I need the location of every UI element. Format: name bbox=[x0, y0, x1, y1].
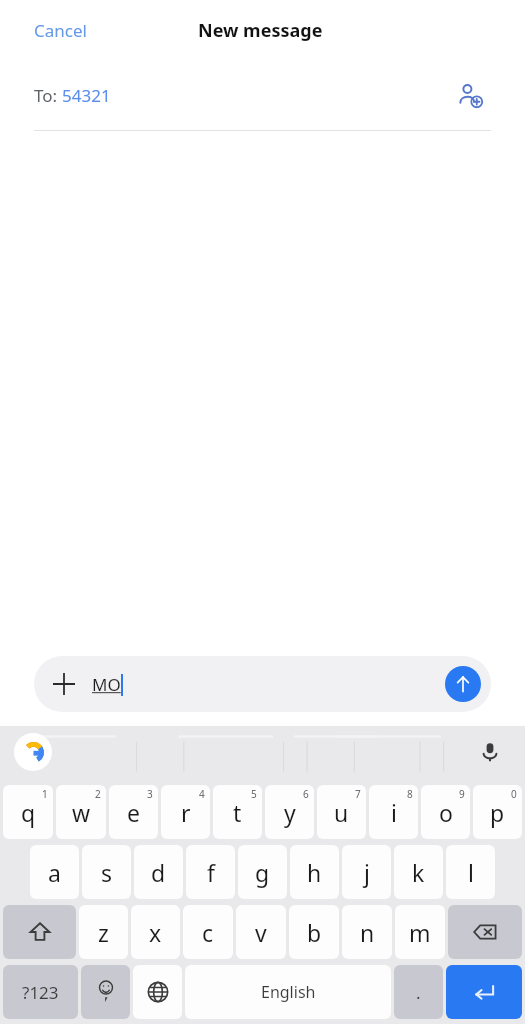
staticText: u bbox=[334, 797, 349, 828]
button[interactable]: x bbox=[131, 905, 180, 959]
button[interactable]: g bbox=[238, 845, 287, 899]
staticText: 5 bbox=[251, 787, 257, 801]
staticText: e bbox=[127, 797, 140, 828]
staticText: 8 bbox=[407, 787, 413, 801]
button[interactable]: e bbox=[109, 785, 158, 839]
staticText: f bbox=[207, 857, 215, 888]
staticText: h bbox=[307, 857, 322, 888]
staticText: x bbox=[149, 917, 162, 948]
button[interactable]: n bbox=[342, 905, 392, 959]
staticText: b bbox=[307, 917, 322, 948]
button[interactable]: i bbox=[369, 785, 418, 839]
staticText: q bbox=[21, 797, 36, 828]
button[interactable]: Voice input bbox=[473, 735, 507, 769]
staticText: k bbox=[412, 857, 425, 888]
button[interactable]: Change language bbox=[133, 965, 182, 1019]
button[interactable]: Send bbox=[445, 666, 481, 702]
staticText: . bbox=[416, 981, 421, 1004]
button[interactable]: Add attachment bbox=[46, 666, 82, 702]
staticText: s bbox=[101, 857, 113, 888]
staticText: 7 bbox=[355, 787, 361, 801]
staticText: 0 bbox=[511, 787, 517, 801]
button[interactable]: w bbox=[56, 785, 106, 839]
button[interactable]: Google bbox=[14, 733, 52, 771]
staticText: g bbox=[255, 857, 270, 888]
staticText: Cancel bbox=[34, 19, 87, 42]
button[interactable]: ?123 bbox=[3, 965, 78, 1019]
button[interactable]: u bbox=[317, 785, 366, 839]
staticText: English bbox=[261, 981, 316, 1003]
staticText: l bbox=[468, 857, 474, 888]
button[interactable]: Cancel bbox=[20, 11, 101, 50]
button[interactable]: Backspace bbox=[448, 905, 522, 959]
staticText: MO bbox=[92, 673, 121, 696]
button[interactable]: p bbox=[473, 785, 522, 839]
staticText: t bbox=[233, 797, 242, 828]
button[interactable]: r bbox=[161, 785, 210, 839]
button[interactable]: z bbox=[79, 905, 128, 959]
staticText: c bbox=[202, 917, 214, 948]
staticText: 54321 bbox=[62, 84, 111, 107]
staticText: z bbox=[98, 917, 109, 948]
button[interactable]: Emoji bbox=[81, 965, 130, 1019]
button[interactable]: f bbox=[186, 845, 235, 899]
button[interactable]: v bbox=[236, 905, 286, 959]
button[interactable]: t bbox=[213, 785, 262, 839]
staticText: To: bbox=[34, 84, 62, 107]
button[interactable]: c bbox=[183, 905, 233, 959]
staticText: w bbox=[72, 797, 91, 828]
staticText: a bbox=[48, 857, 61, 888]
button[interactable]: y bbox=[265, 785, 314, 839]
staticText: 3 bbox=[147, 787, 153, 801]
staticText: n bbox=[360, 917, 375, 948]
button[interactable]: a bbox=[30, 845, 79, 899]
staticText: m bbox=[409, 917, 431, 948]
staticText: 1 bbox=[42, 787, 48, 801]
button[interactable]: q bbox=[3, 785, 53, 839]
staticText: y bbox=[284, 797, 296, 828]
button[interactable]: Add attachment bbox=[34, 656, 491, 712]
staticText: 9 bbox=[459, 787, 465, 801]
staticText: 6 bbox=[303, 787, 309, 801]
button[interactable]: Add contact bbox=[453, 78, 487, 112]
button[interactable]: English bbox=[185, 965, 391, 1019]
button[interactable]: Shift bbox=[3, 905, 76, 959]
button[interactable]: b bbox=[289, 905, 339, 959]
staticText: ?123 bbox=[22, 981, 59, 1004]
button[interactable]: m bbox=[395, 905, 445, 959]
staticText: o bbox=[439, 797, 453, 828]
button[interactable]: j bbox=[342, 845, 391, 899]
staticText: v bbox=[255, 917, 267, 948]
staticText: p bbox=[490, 797, 505, 828]
staticText: d bbox=[151, 857, 166, 888]
button[interactable]: d bbox=[134, 845, 183, 899]
staticText: 2 bbox=[95, 787, 101, 801]
staticText: New message bbox=[198, 18, 323, 43]
button[interactable]: s bbox=[82, 845, 131, 899]
button[interactable]: k bbox=[394, 845, 443, 899]
button[interactable]: h bbox=[290, 845, 339, 899]
staticText: i bbox=[391, 797, 397, 828]
button[interactable]: l bbox=[446, 845, 495, 899]
staticText: r bbox=[181, 797, 191, 828]
button[interactable]: . bbox=[394, 965, 443, 1019]
staticText: 4 bbox=[199, 787, 205, 801]
button[interactable]: Enter bbox=[446, 965, 522, 1019]
button[interactable]: o bbox=[421, 785, 470, 839]
staticText: j bbox=[364, 857, 370, 888]
